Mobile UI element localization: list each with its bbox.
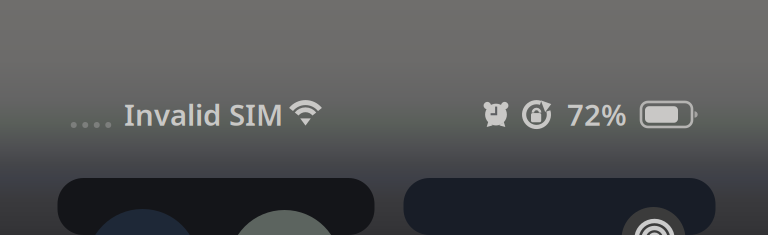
button[interactable]: Connectivity controls [57,178,374,235]
staticText: 72% [567,95,627,134]
button[interactable]: Now playing [403,178,715,235]
staticText: Invalid SIM [124,95,283,134]
